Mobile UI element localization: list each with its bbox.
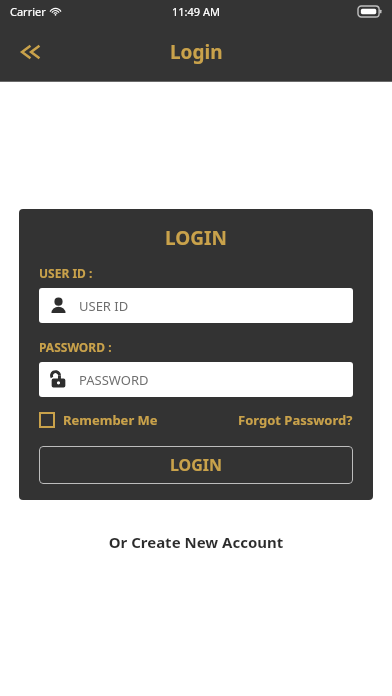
button[interactable]: PASSWORD [39,362,353,397]
button[interactable]: Forgot Password? [238,411,353,429]
staticText: LOGIN [39,225,353,251]
button[interactable]: LOGIN [39,446,353,484]
button[interactable]: Or Create New Account [0,528,392,556]
staticText: PASSWORD [79,371,149,389]
staticText: Remember Me [63,411,158,429]
staticText: PASSWORD : [39,339,112,355]
staticText: USER ID [79,297,129,315]
staticText: 11:49 AM [172,4,220,19]
button[interactable]: Remember Me [39,411,158,429]
button[interactable]: USER ID [39,288,353,323]
staticText: USER ID : [39,265,93,281]
button[interactable]: Back [8,30,52,74]
staticText: Carrier [10,4,46,19]
staticText: Login [170,39,223,65]
staticText: LOGIN [170,454,223,476]
